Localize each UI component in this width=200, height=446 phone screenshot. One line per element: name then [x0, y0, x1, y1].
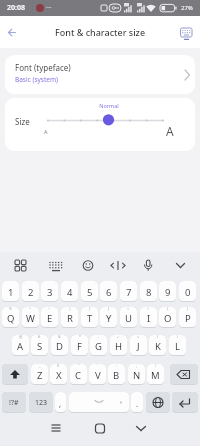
button[interactable]	[107, 255, 129, 277]
button[interactable]	[88, 418, 112, 440]
button[interactable]: .	[131, 392, 143, 413]
staticText: A	[17, 340, 24, 353]
button[interactable]: 2	[22, 281, 39, 302]
button[interactable]: 6	[100, 281, 117, 302]
staticText: 3	[47, 286, 53, 299]
button[interactable]: 123	[29, 392, 53, 413]
button[interactable]	[146, 392, 170, 413]
button[interactable]	[69, 392, 129, 413]
button[interactable]: {	[159, 307, 176, 328]
staticText: }	[187, 307, 189, 311]
button[interactable]	[44, 418, 68, 440]
button[interactable]: ~	[41, 307, 58, 328]
staticText: D	[56, 340, 63, 353]
staticText: %	[9, 307, 12, 311]
button[interactable]: 0	[179, 281, 196, 302]
staticText: V	[95, 369, 101, 382]
staticText: {	[167, 307, 169, 311]
staticText: 5	[87, 286, 93, 299]
staticText: Y	[106, 312, 112, 325]
staticText: U	[125, 312, 132, 325]
button[interactable]	[10, 255, 32, 277]
button[interactable]: #	[31, 335, 48, 356]
button[interactable]: @	[12, 335, 29, 356]
button[interactable]: ;	[128, 364, 145, 385]
button[interactable]: <	[120, 307, 137, 328]
staticText: ]	[108, 307, 110, 311]
button[interactable]: )	[169, 335, 186, 356]
staticText: @	[19, 335, 23, 339]
button[interactable]: [	[81, 307, 98, 328]
staticText: Normal	[89, 102, 129, 109]
staticText: -	[98, 335, 100, 339]
button[interactable]	[2, 364, 28, 385]
button[interactable]: 9	[159, 281, 176, 302]
staticText: C	[75, 369, 82, 382]
staticText: Q	[7, 312, 15, 325]
button[interactable]	[44, 255, 66, 277]
button[interactable]	[169, 255, 191, 277]
staticText: Z	[37, 369, 43, 382]
button[interactable]: "	[70, 364, 87, 385]
button[interactable]: ^	[22, 307, 39, 328]
staticText: Basic (system)	[15, 75, 59, 84]
staticText: >	[147, 307, 150, 311]
button[interactable]: }	[179, 307, 196, 328]
button[interactable]	[77, 255, 99, 277]
button[interactable]: |	[61, 307, 78, 328]
staticText: I	[147, 312, 151, 325]
button[interactable]	[176, 21, 198, 45]
button[interactable]: ]	[100, 307, 117, 328]
staticText: M	[151, 369, 160, 382]
button[interactable]: (	[149, 335, 166, 356]
button[interactable]	[3, 23, 21, 41]
button[interactable]: &	[51, 335, 68, 356]
staticText: P	[185, 312, 191, 325]
button[interactable]: :	[108, 364, 125, 385]
button[interactable]: ,	[55, 392, 66, 413]
button[interactable]: 3	[41, 281, 58, 302]
button[interactable]: >	[140, 307, 157, 328]
staticText: *	[79, 335, 81, 339]
staticText: <	[127, 307, 130, 311]
staticText: "	[78, 364, 80, 368]
button[interactable]: *	[71, 335, 88, 356]
button[interactable]: $	[50, 364, 67, 385]
staticText: 8	[146, 286, 152, 299]
staticText: 123	[35, 398, 48, 408]
button[interactable]: 4	[61, 281, 78, 302]
staticText: 1	[8, 286, 14, 299]
button[interactable]: =	[130, 335, 147, 356]
button[interactable]: /	[147, 364, 164, 385]
staticText: G	[95, 340, 102, 353]
button[interactable]	[129, 418, 153, 440]
button[interactable]: %	[2, 307, 19, 328]
staticText: .	[136, 398, 139, 409]
staticText: ^	[29, 307, 32, 311]
button[interactable]	[170, 364, 198, 385]
button[interactable]: 7	[120, 281, 137, 302]
staticText: :	[116, 364, 117, 368]
button[interactable]: _	[31, 364, 48, 385]
button[interactable]: 1	[2, 281, 19, 302]
button[interactable]: Size	[5, 98, 195, 151]
staticText: +	[117, 335, 120, 339]
button[interactable]: '	[89, 364, 106, 385]
button[interactable]: !?#	[2, 392, 26, 413]
staticText: /	[155, 364, 157, 368]
staticText: 7	[126, 286, 132, 299]
button[interactable]	[137, 255, 159, 277]
staticText: B	[113, 369, 120, 382]
staticText: L	[175, 340, 180, 353]
staticText: Font & character size	[55, 26, 146, 38]
button[interactable]: -	[90, 335, 107, 356]
button[interactable]	[172, 392, 198, 413]
staticText: T	[87, 312, 93, 325]
button[interactable]: 5	[81, 281, 98, 302]
staticText: R	[67, 312, 73, 325]
staticText: W	[26, 312, 35, 325]
button[interactable]: +	[110, 335, 127, 356]
button[interactable]: Font (typeface)	[5, 55, 195, 94]
staticText: |	[69, 307, 71, 311]
button[interactable]: 8	[140, 281, 157, 302]
